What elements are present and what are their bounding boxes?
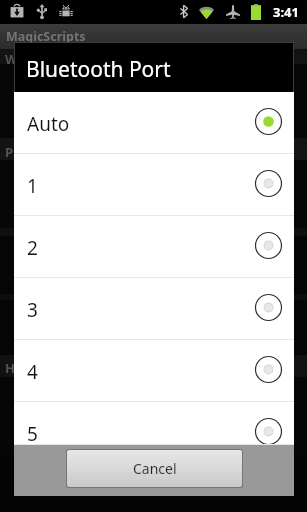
button[interactable]: 2 (14, 216, 294, 278)
staticText: Cancel (133, 459, 177, 478)
staticText: Auto (27, 111, 70, 137)
staticText: 5 (27, 421, 38, 447)
button[interactable]: Cancel (67, 450, 242, 487)
staticText: 1 (27, 173, 38, 199)
staticText: Welcome (5, 50, 65, 68)
staticText: 2 (27, 235, 38, 261)
staticText: 3:41 (273, 3, 299, 21)
staticText: History (5, 359, 53, 377)
button[interactable]: 1 (14, 154, 294, 216)
staticText: Bluetooth Port (26, 55, 171, 84)
staticText: Previous (5, 143, 61, 161)
button[interactable]: 3 (14, 278, 294, 340)
staticText: MagicScripts (6, 28, 86, 45)
staticText: 3 (27, 297, 38, 323)
button[interactable]: Auto (14, 92, 294, 154)
staticText: 4 (27, 359, 38, 385)
button[interactable]: 5 (14, 402, 294, 445)
button[interactable]: 4 (14, 340, 294, 402)
